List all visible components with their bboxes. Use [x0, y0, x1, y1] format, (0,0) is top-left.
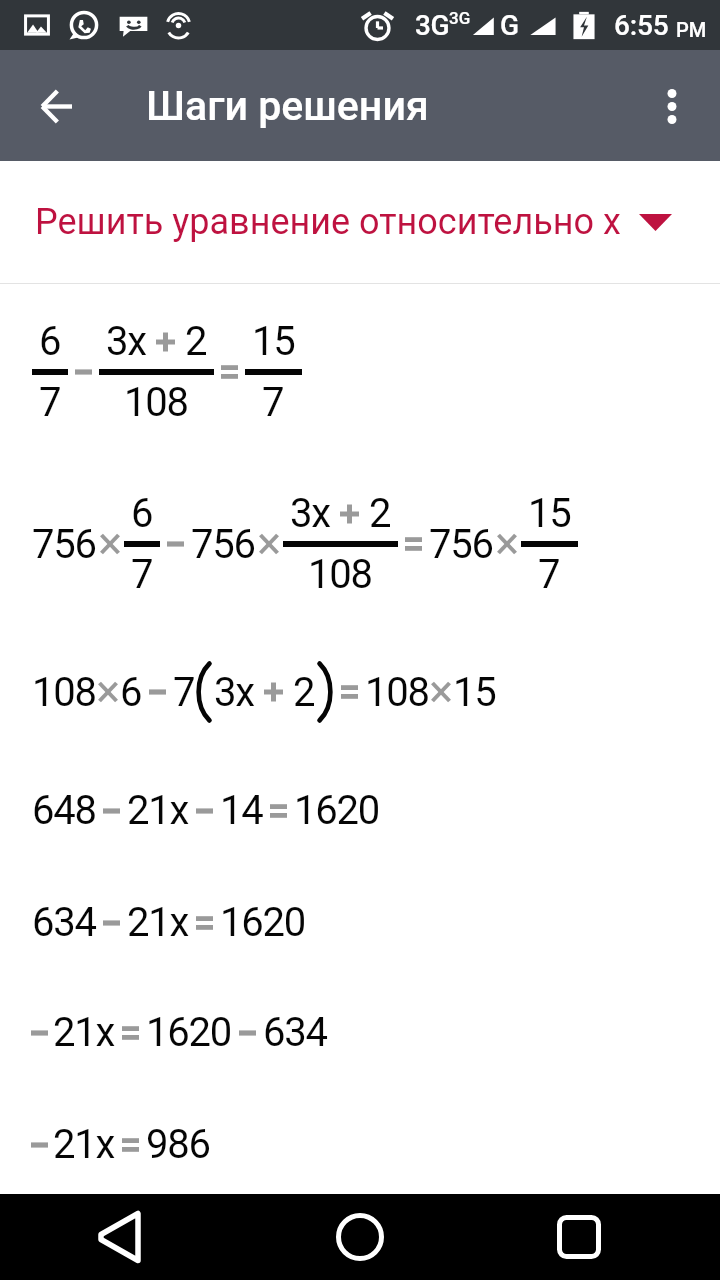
staticText: 2 [369, 490, 391, 537]
staticText: 21x [53, 1121, 115, 1168]
staticText: 108 [124, 379, 188, 426]
staticText: 756 [32, 521, 96, 568]
staticText: 7 [131, 551, 153, 598]
button[interactable]: Back [74, 1194, 164, 1280]
staticText: 7 [173, 669, 195, 716]
button[interactable]: Home [315, 1194, 405, 1280]
button[interactable]: Back [24, 74, 88, 138]
staticText: 15 [453, 669, 496, 716]
staticText: 3x [106, 318, 146, 365]
staticText: 7 [262, 379, 284, 426]
staticText: 2 [185, 318, 207, 365]
staticText: 21x [127, 899, 189, 946]
staticText: 21x [127, 787, 189, 834]
staticText: Шаги решения [146, 82, 429, 130]
staticText: 6:55 [614, 9, 669, 42]
button[interactable]: More options [640, 74, 704, 138]
staticText: 7 [538, 551, 560, 598]
staticText: 1620 [146, 1009, 232, 1056]
staticText: 648 [32, 787, 96, 834]
staticText: 3x [290, 490, 330, 537]
staticText: 756 [191, 521, 255, 568]
button[interactable]: Recent apps [534, 1194, 624, 1280]
staticText: 634 [263, 1009, 327, 1056]
staticText: 6 [131, 490, 153, 537]
staticText: 1620 [294, 787, 380, 834]
staticText: 6 [39, 318, 61, 365]
staticText: 634 [32, 899, 96, 946]
staticText: 21x [53, 1009, 115, 1056]
staticText: 108 [308, 551, 372, 598]
staticText: 108 [32, 669, 96, 716]
staticText: 1620 [220, 899, 306, 946]
staticText: G [500, 9, 520, 42]
staticText: 756 [429, 521, 493, 568]
staticText: 2 [293, 669, 315, 716]
button[interactable]: Решить уравнение относительно x [0, 161, 720, 283]
staticText: 108 [365, 669, 429, 716]
staticText: 986 [146, 1121, 210, 1168]
staticText: 7 [39, 379, 61, 426]
staticText: 14 [220, 787, 263, 834]
staticText: PM [676, 18, 707, 41]
staticText: 6 [120, 669, 142, 716]
staticText: Решить уравнение относительно x [35, 201, 621, 243]
staticText: 3x [214, 669, 254, 716]
staticText: 15 [528, 490, 571, 537]
staticText: 3G [415, 9, 449, 42]
staticText: 15 [252, 318, 295, 365]
staticText: 3G [449, 8, 471, 28]
